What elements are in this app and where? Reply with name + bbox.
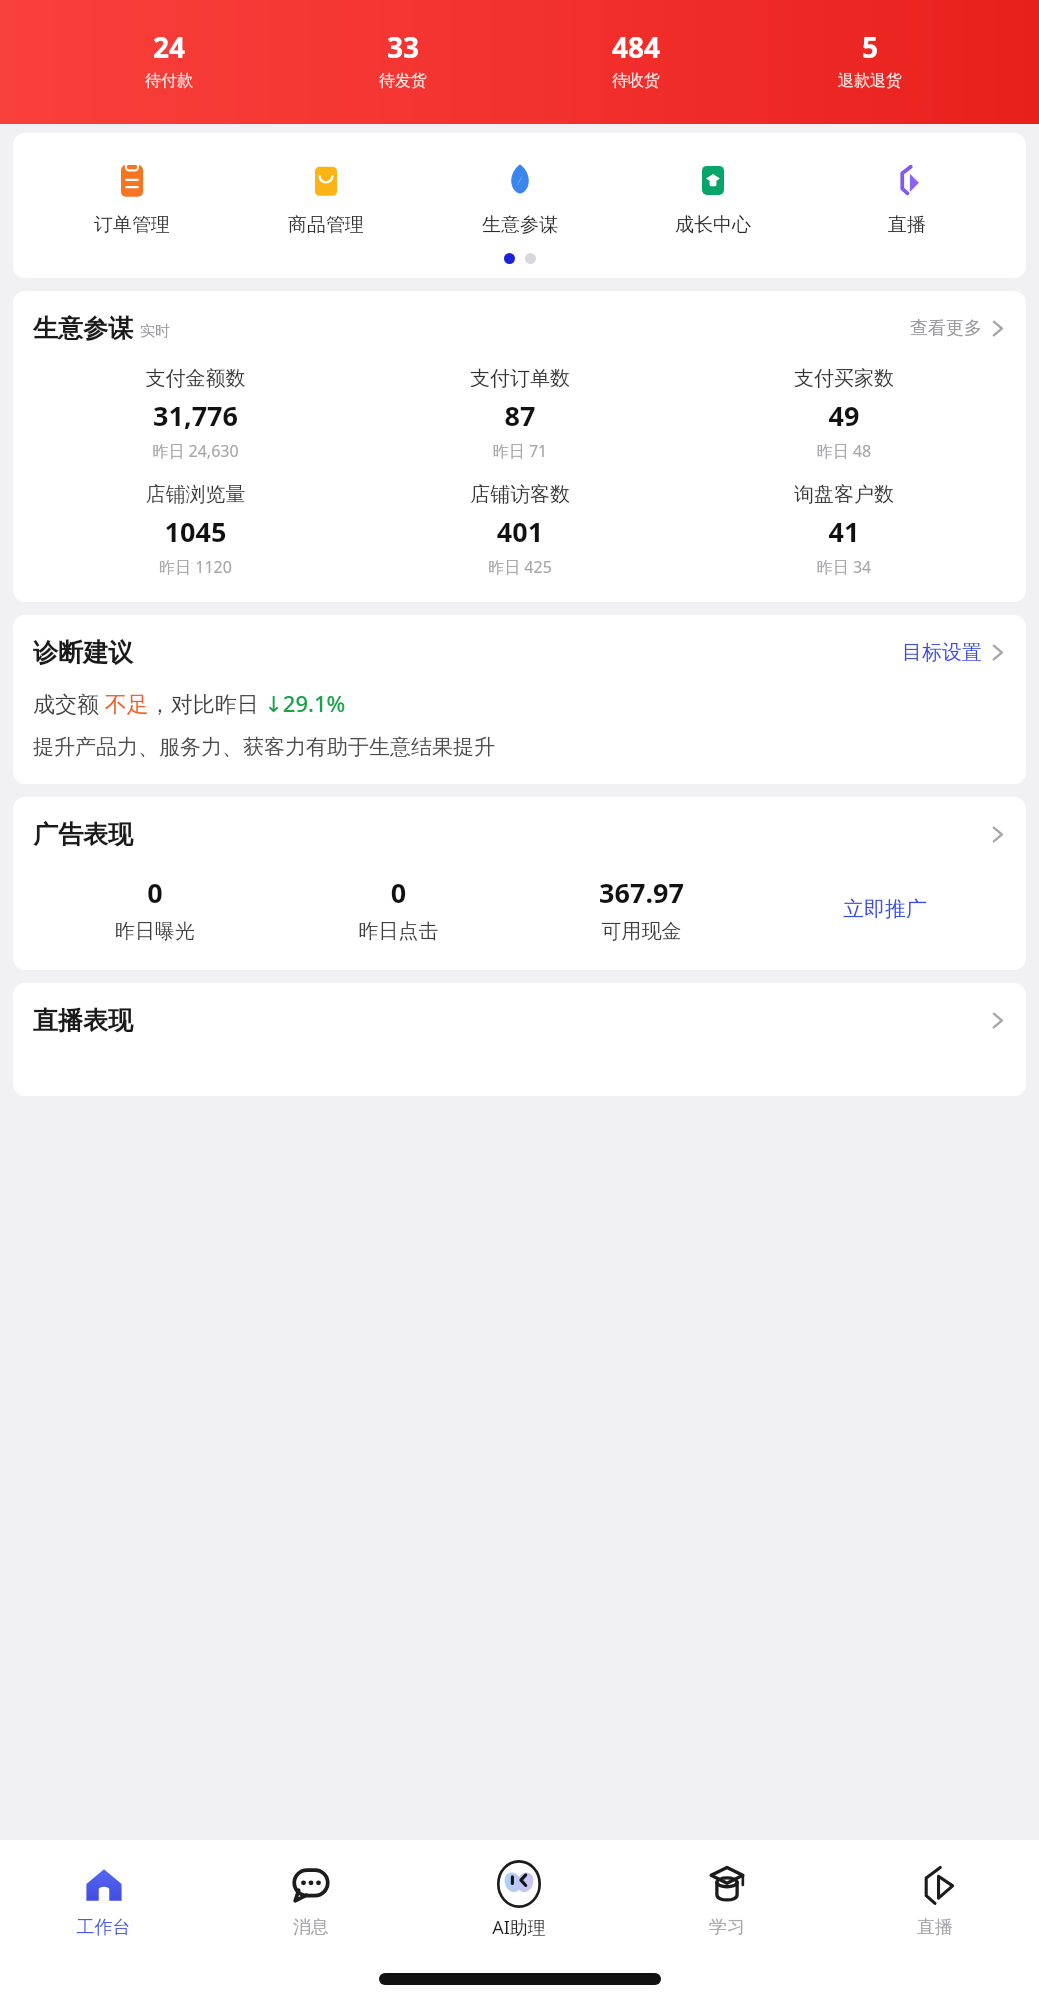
staticText: 支付买家数 <box>682 366 1006 391</box>
staticText: 工作台 <box>0 1916 207 1939</box>
staticText: 33 <box>339 28 467 66</box>
staticText: 退款退货 <box>806 71 934 91</box>
staticText: 昨日 425 <box>358 556 682 578</box>
button[interactable]: 0 <box>33 874 277 944</box>
staticText: 昨日 1120 <box>33 556 358 578</box>
staticText: 待收货 <box>572 71 700 91</box>
staticText: 可用现金 <box>520 919 763 944</box>
staticText: 0 <box>33 874 277 911</box>
other: 工作台 <box>82 1863 126 1907</box>
button[interactable]: 484 <box>572 28 700 91</box>
button[interactable]: 直播 <box>832 157 982 237</box>
staticText: 消息 <box>207 1916 415 1939</box>
other: 消息 <box>289 1863 333 1907</box>
button[interactable]: 生意参谋 <box>33 313 1006 344</box>
other: AI助理 <box>495 1860 543 1908</box>
button[interactable]: 广告表现 <box>33 819 1006 850</box>
button[interactable]: 24 <box>105 28 233 91</box>
button[interactable]: 消息 <box>207 1840 415 1958</box>
staticText: 待付款 <box>105 71 233 91</box>
staticText: 直播 <box>832 213 982 237</box>
staticText: 5 <box>806 28 934 66</box>
button[interactable]: 学习 <box>623 1840 831 1958</box>
staticText: 昨日曝光 <box>33 919 277 944</box>
button[interactable]: 支付金额数 <box>33 366 358 462</box>
button[interactable]: 支付订单数 <box>358 366 682 462</box>
staticText: 订单管理 <box>57 213 207 237</box>
button[interactable]: 367.97 <box>520 874 763 944</box>
staticText: 学习 <box>623 1916 831 1939</box>
staticText: 成长中心 <box>638 213 788 237</box>
staticText: 商品管理 <box>251 213 401 237</box>
staticText: 目标设置 <box>902 640 982 665</box>
staticText: 直播 <box>831 1916 1039 1939</box>
staticText: 昨日 71 <box>358 440 682 462</box>
staticText: 87 <box>358 397 682 434</box>
button[interactable]: 订单管理 <box>57 157 207 237</box>
button[interactable]: 成长中心 <box>638 157 788 237</box>
staticText: 0 <box>277 874 520 911</box>
staticText: 直播表现 <box>33 1005 133 1036</box>
button[interactable]: 诊断建议 <box>33 637 1006 668</box>
staticText: 生意参谋 <box>33 313 133 344</box>
staticText: AI助理 <box>415 1915 623 1940</box>
staticText: 401 <box>358 513 682 550</box>
staticText: 生意参谋 <box>445 213 595 237</box>
staticText: 昨日 24,630 <box>33 440 358 462</box>
staticText: 31,776 <box>33 397 358 434</box>
staticText: 支付订单数 <box>358 366 682 391</box>
staticText: 1045 <box>33 513 358 550</box>
staticText: 店铺浏览量 <box>33 482 358 507</box>
staticText: 昨日点击 <box>277 919 520 944</box>
button[interactable]: 询盘客户数 <box>682 482 1006 578</box>
staticText: 成交额 不足，对比昨日 ↓29.1% <box>33 688 346 718</box>
staticText: 待发货 <box>339 71 467 91</box>
staticText: 484 <box>572 28 700 66</box>
staticText: 24 <box>105 28 233 66</box>
staticText: 367.97 <box>520 874 763 911</box>
button[interactable]: 支付买家数 <box>682 366 1006 462</box>
button[interactable]: 直播 <box>831 1840 1039 1958</box>
other: 直播 <box>913 1863 957 1907</box>
staticText: 实时 <box>140 322 170 341</box>
staticText: 查看更多 <box>910 317 982 340</box>
button[interactable]: 生意参谋 <box>445 157 595 237</box>
button[interactable]: 直播表现 <box>33 1005 1006 1036</box>
staticText: 诊断建议 <box>33 637 133 668</box>
button[interactable]: 5 <box>806 28 934 91</box>
button[interactable]: 0 <box>277 874 520 944</box>
other: 学习 <box>705 1863 749 1907</box>
button[interactable]: 店铺浏览量 <box>33 482 358 578</box>
button[interactable]: 立即推广 <box>763 896 1006 922</box>
staticText: 昨日 48 <box>682 440 1006 462</box>
staticText: 立即推广 <box>843 896 927 922</box>
button[interactable]: 店铺访客数 <box>358 482 682 578</box>
staticText: 广告表现 <box>33 819 133 850</box>
staticText: 提升产品力、服务力、获客力有助于生意结果提升 <box>33 734 495 760</box>
staticText: 41 <box>682 513 1006 550</box>
staticText: 支付金额数 <box>33 366 358 391</box>
button[interactable]: AI助理 <box>415 1840 623 1958</box>
button[interactable]: 工作台 <box>0 1840 207 1958</box>
button[interactable]: 商品管理 <box>251 157 401 237</box>
staticText: 昨日 34 <box>682 556 1006 578</box>
staticText: 店铺访客数 <box>358 482 682 507</box>
staticText: 49 <box>682 397 1006 434</box>
staticText: 询盘客户数 <box>682 482 1006 507</box>
button[interactable]: 33 <box>339 28 467 91</box>
